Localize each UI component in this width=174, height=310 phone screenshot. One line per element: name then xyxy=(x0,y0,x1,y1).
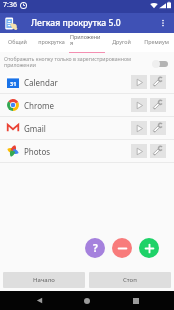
staticText: Отображать кнопку только в зарегистриров… xyxy=(4,55,144,69)
button[interactable]: Общий xyxy=(0,33,34,52)
button[interactable]: Home xyxy=(77,291,97,310)
button[interactable]: Configure Calendar xyxy=(150,75,166,89)
button[interactable]: Recents xyxy=(126,291,146,310)
button[interactable]: Remove xyxy=(112,238,132,258)
staticText: Легкая прокрутка 5.0 xyxy=(31,17,121,29)
button[interactable]: прокрутка xyxy=(34,33,69,52)
button[interactable]: More options xyxy=(155,15,171,31)
button[interactable]: Start Gmail xyxy=(131,121,147,135)
button[interactable]: Chrome xyxy=(0,94,174,116)
button[interactable]: Toggle registered app only xyxy=(152,58,168,70)
button[interactable]: Help xyxy=(85,238,105,258)
button[interactable]: Configure Gmail xyxy=(150,121,166,135)
button[interactable]: Начало xyxy=(3,272,85,288)
button[interactable]: Приложения xyxy=(69,33,104,52)
button[interactable]: Photos xyxy=(0,140,174,162)
button[interactable]: Start Calendar xyxy=(131,75,147,89)
button[interactable]: Start Photos xyxy=(131,144,147,158)
button[interactable]: Back xyxy=(29,291,49,310)
button[interactable]: Стоп xyxy=(89,272,171,288)
staticText: 31 xyxy=(10,80,17,87)
staticText: Премиум xyxy=(140,38,173,45)
button[interactable]: Gmail xyxy=(0,117,174,139)
staticText: Приложения xyxy=(70,33,103,47)
button[interactable]: Другой xyxy=(104,33,139,52)
button[interactable]: 31 xyxy=(0,71,174,93)
button[interactable]: Configure Chrome xyxy=(150,98,166,112)
staticText: Начало xyxy=(33,276,55,284)
staticText: Gmail xyxy=(24,123,46,134)
staticText: Calendar xyxy=(24,77,58,88)
staticText: Общий xyxy=(1,38,34,45)
button[interactable]: Add xyxy=(139,238,159,258)
button[interactable]: Start Chrome xyxy=(131,98,147,112)
staticText: Photos xyxy=(24,146,51,157)
staticText: Другой xyxy=(105,38,138,45)
button[interactable]: Configure Photos xyxy=(150,144,166,158)
staticText: Стоп xyxy=(123,276,137,284)
staticText: 7:36 xyxy=(3,0,17,10)
button[interactable]: Премиум xyxy=(139,33,174,52)
staticText: ? xyxy=(93,241,98,255)
staticText: Chrome xyxy=(24,100,54,111)
staticText: прокрутка xyxy=(35,38,68,45)
